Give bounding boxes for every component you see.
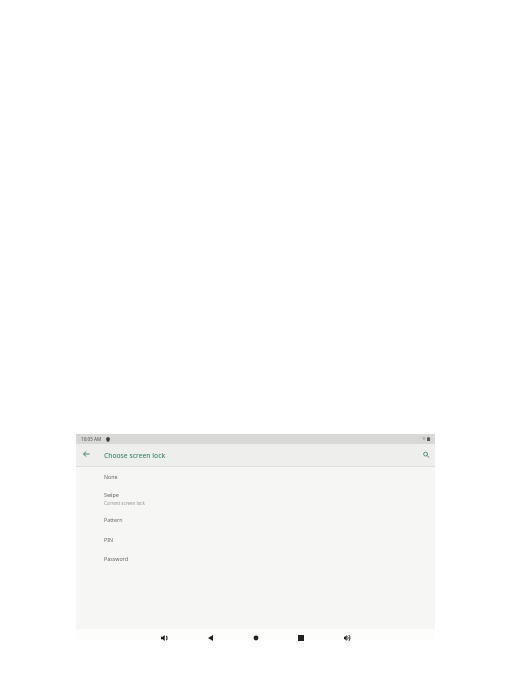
- button[interactable]: Back: [200, 634, 220, 641]
- staticText: 10:05 AM: [81, 436, 102, 442]
- button[interactable]: Swipe: [76, 487, 435, 510]
- button[interactable]: Pattern: [76, 510, 435, 529]
- staticText: None: [104, 473, 118, 480]
- staticText: Swipe: [104, 491, 119, 498]
- button[interactable]: Recent apps: [291, 634, 311, 641]
- staticText: Choose screen lock: [104, 451, 166, 460]
- button[interactable]: Back: [76, 444, 96, 466]
- button[interactable]: Password: [76, 549, 435, 568]
- button[interactable]: None: [76, 467, 435, 486]
- button[interactable]: Volume up: [337, 634, 357, 641]
- staticText: PIN: [104, 536, 114, 543]
- button[interactable]: Volume down: [154, 634, 174, 641]
- button[interactable]: Search: [413, 444, 435, 466]
- staticText: Current screen lock: [104, 500, 145, 506]
- button[interactable]: PIN: [76, 530, 435, 549]
- staticText: Password: [104, 555, 128, 562]
- button[interactable]: Home: [246, 634, 266, 641]
- staticText: Pattern: [104, 516, 123, 523]
